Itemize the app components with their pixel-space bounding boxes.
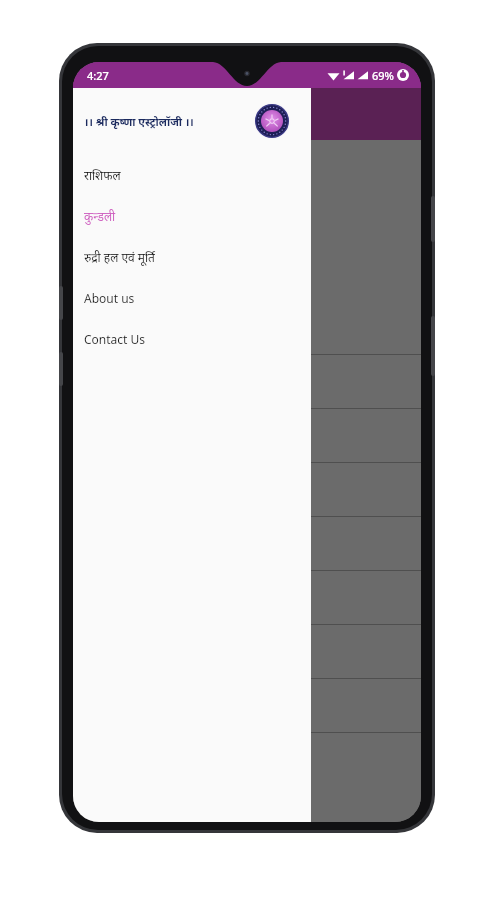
staticText: Contact Us: [84, 331, 146, 347]
button[interactable]: रुद्री हल एवं मूर्ति: [73, 236, 311, 277]
button[interactable]: [73, 408, 421, 462]
button[interactable]: [73, 624, 421, 678]
button[interactable]: [73, 462, 421, 516]
staticText: 69%: [372, 68, 394, 83]
button[interactable]: App logo: [251, 100, 293, 142]
staticText: राशिफल: [84, 167, 121, 183]
staticText: our lives and provide: [87, 280, 215, 298]
button[interactable]: [73, 516, 421, 570]
button[interactable]: [73, 354, 421, 408]
button[interactable]: Contact Us: [73, 318, 311, 359]
staticText: 100% समाधान।: [87, 218, 169, 236]
staticText: 4:27: [87, 68, 109, 83]
button[interactable]: [73, 570, 421, 624]
button[interactable]: राशिफल: [73, 154, 311, 195]
staticText: Jyotish is a paramount in: [87, 250, 238, 268]
staticText: कुन्डली: [84, 208, 116, 224]
button[interactable]: [73, 678, 421, 732]
button[interactable]: [73, 732, 421, 786]
staticText: answer.: [87, 302, 133, 320]
staticText: ।। श्री कृष्णा एस्ट्रोलॉजी ।।: [84, 114, 194, 129]
staticText: रुद्री हल एवं मूर्ति: [84, 249, 155, 265]
button[interactable]: कुन्डली: [73, 195, 311, 236]
staticText: About us: [84, 290, 135, 306]
button[interactable]: About us: [73, 277, 311, 318]
staticText: रहा सम्पूर्ण समाधान: [87, 170, 178, 188]
